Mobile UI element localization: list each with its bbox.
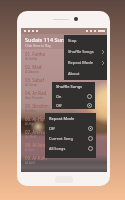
button[interactable]: Stop <box>64 35 107 46</box>
button[interactable]: 03. Sabaf <box>21 75 107 88</box>
staticText: Current Song <box>49 136 73 141</box>
button[interactable]: All Songs <box>49 143 93 153</box>
staticText: 06. Al-Hijr <box>25 116 46 122</box>
button[interactable]: Sudais 114 Sura <box>21 34 107 49</box>
staticText: Shuffle Songs <box>68 49 94 54</box>
button[interactable]: Shuffle Songs <box>64 46 107 57</box>
button[interactable]: Off <box>56 101 92 109</box>
button[interactable]: Repeat Mode <box>64 57 107 68</box>
button[interactable]: 06. Al-Hijr <box>21 114 107 127</box>
staticText: Al-Fatiha <box>25 57 38 61</box>
staticText: 05. Ibrahim <box>25 103 49 109</box>
button[interactable]: 04. Ar-Rad <box>21 88 107 101</box>
staticText: 02. Mad <box>25 64 42 70</box>
staticText: Al-Isra <box>25 148 34 152</box>
staticText: Repeat Mode <box>68 60 93 65</box>
staticText: An-Nahl <box>25 135 37 139</box>
staticText: Click Here to Play <box>25 44 51 48</box>
staticText: 03. Sabaf <box>25 77 44 83</box>
staticText: Abu Thunder <box>25 96 44 100</box>
staticText: Off <box>49 126 55 131</box>
staticText: Al-Kahf <box>25 161 36 165</box>
staticText: 01. Fatiha <box>25 51 45 57</box>
staticText: Stop <box>68 38 77 43</box>
staticText: Al-Hijr <box>25 122 34 126</box>
staticText: 04. Ar-Rad <box>25 90 47 96</box>
button[interactable]: 01. Fatiha <box>21 49 107 62</box>
staticText: Al-Imran <box>25 83 38 87</box>
staticText: Off <box>56 103 62 108</box>
button[interactable]: 08. Al-Isra <box>21 140 107 153</box>
button[interactable]: About <box>64 68 107 79</box>
staticText: About <box>68 71 80 76</box>
button[interactable]: 05. Ibrahim <box>21 101 107 114</box>
staticText: 09. Al-Kahf <box>25 155 48 161</box>
staticText: On <box>56 94 62 99</box>
staticText: 08. Al-Isra <box>25 142 46 148</box>
staticText: Ibrahim <box>25 109 37 113</box>
button[interactable]: 07. An-Nahl <box>21 127 107 140</box>
staticText: All Songs <box>49 146 66 151</box>
button[interactable]: On <box>56 91 92 101</box>
button[interactable]: Off <box>49 123 93 133</box>
button[interactable]: Current Song <box>49 133 93 143</box>
staticText: Al-Baqara <box>25 70 39 74</box>
button[interactable]: 09. Al-Kahf <box>21 153 107 166</box>
staticText: Sudais 114 Sura <box>25 36 67 43</box>
staticText: Shuffle Songs <box>56 84 83 89</box>
staticText: 07. An-Nahl <box>25 129 49 135</box>
staticText: Repeat Mode <box>49 116 75 121</box>
button[interactable]: 02. Mad <box>21 62 107 75</box>
